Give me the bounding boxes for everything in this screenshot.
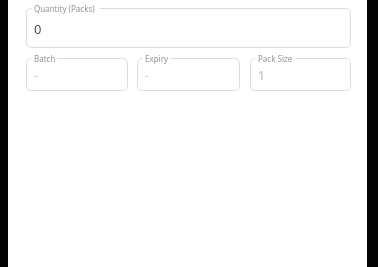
button[interactable]: Batch, empty (26, 53, 128, 91)
staticText: Pack Size (258, 53, 293, 64)
button[interactable]: Quantity in packs, 0 (26, 3, 351, 48)
staticText: Batch (34, 53, 56, 64)
staticText: Expiry (145, 53, 169, 64)
button[interactable]: Pack size, 1 (250, 53, 351, 91)
staticText: Quantity (Packs) (34, 3, 95, 14)
staticText: 1 (258, 67, 265, 83)
button[interactable]: Expiry date, empty (137, 53, 240, 91)
staticText: - (34, 67, 38, 82)
staticText: - (145, 67, 149, 82)
staticText: 0 (34, 20, 42, 38)
